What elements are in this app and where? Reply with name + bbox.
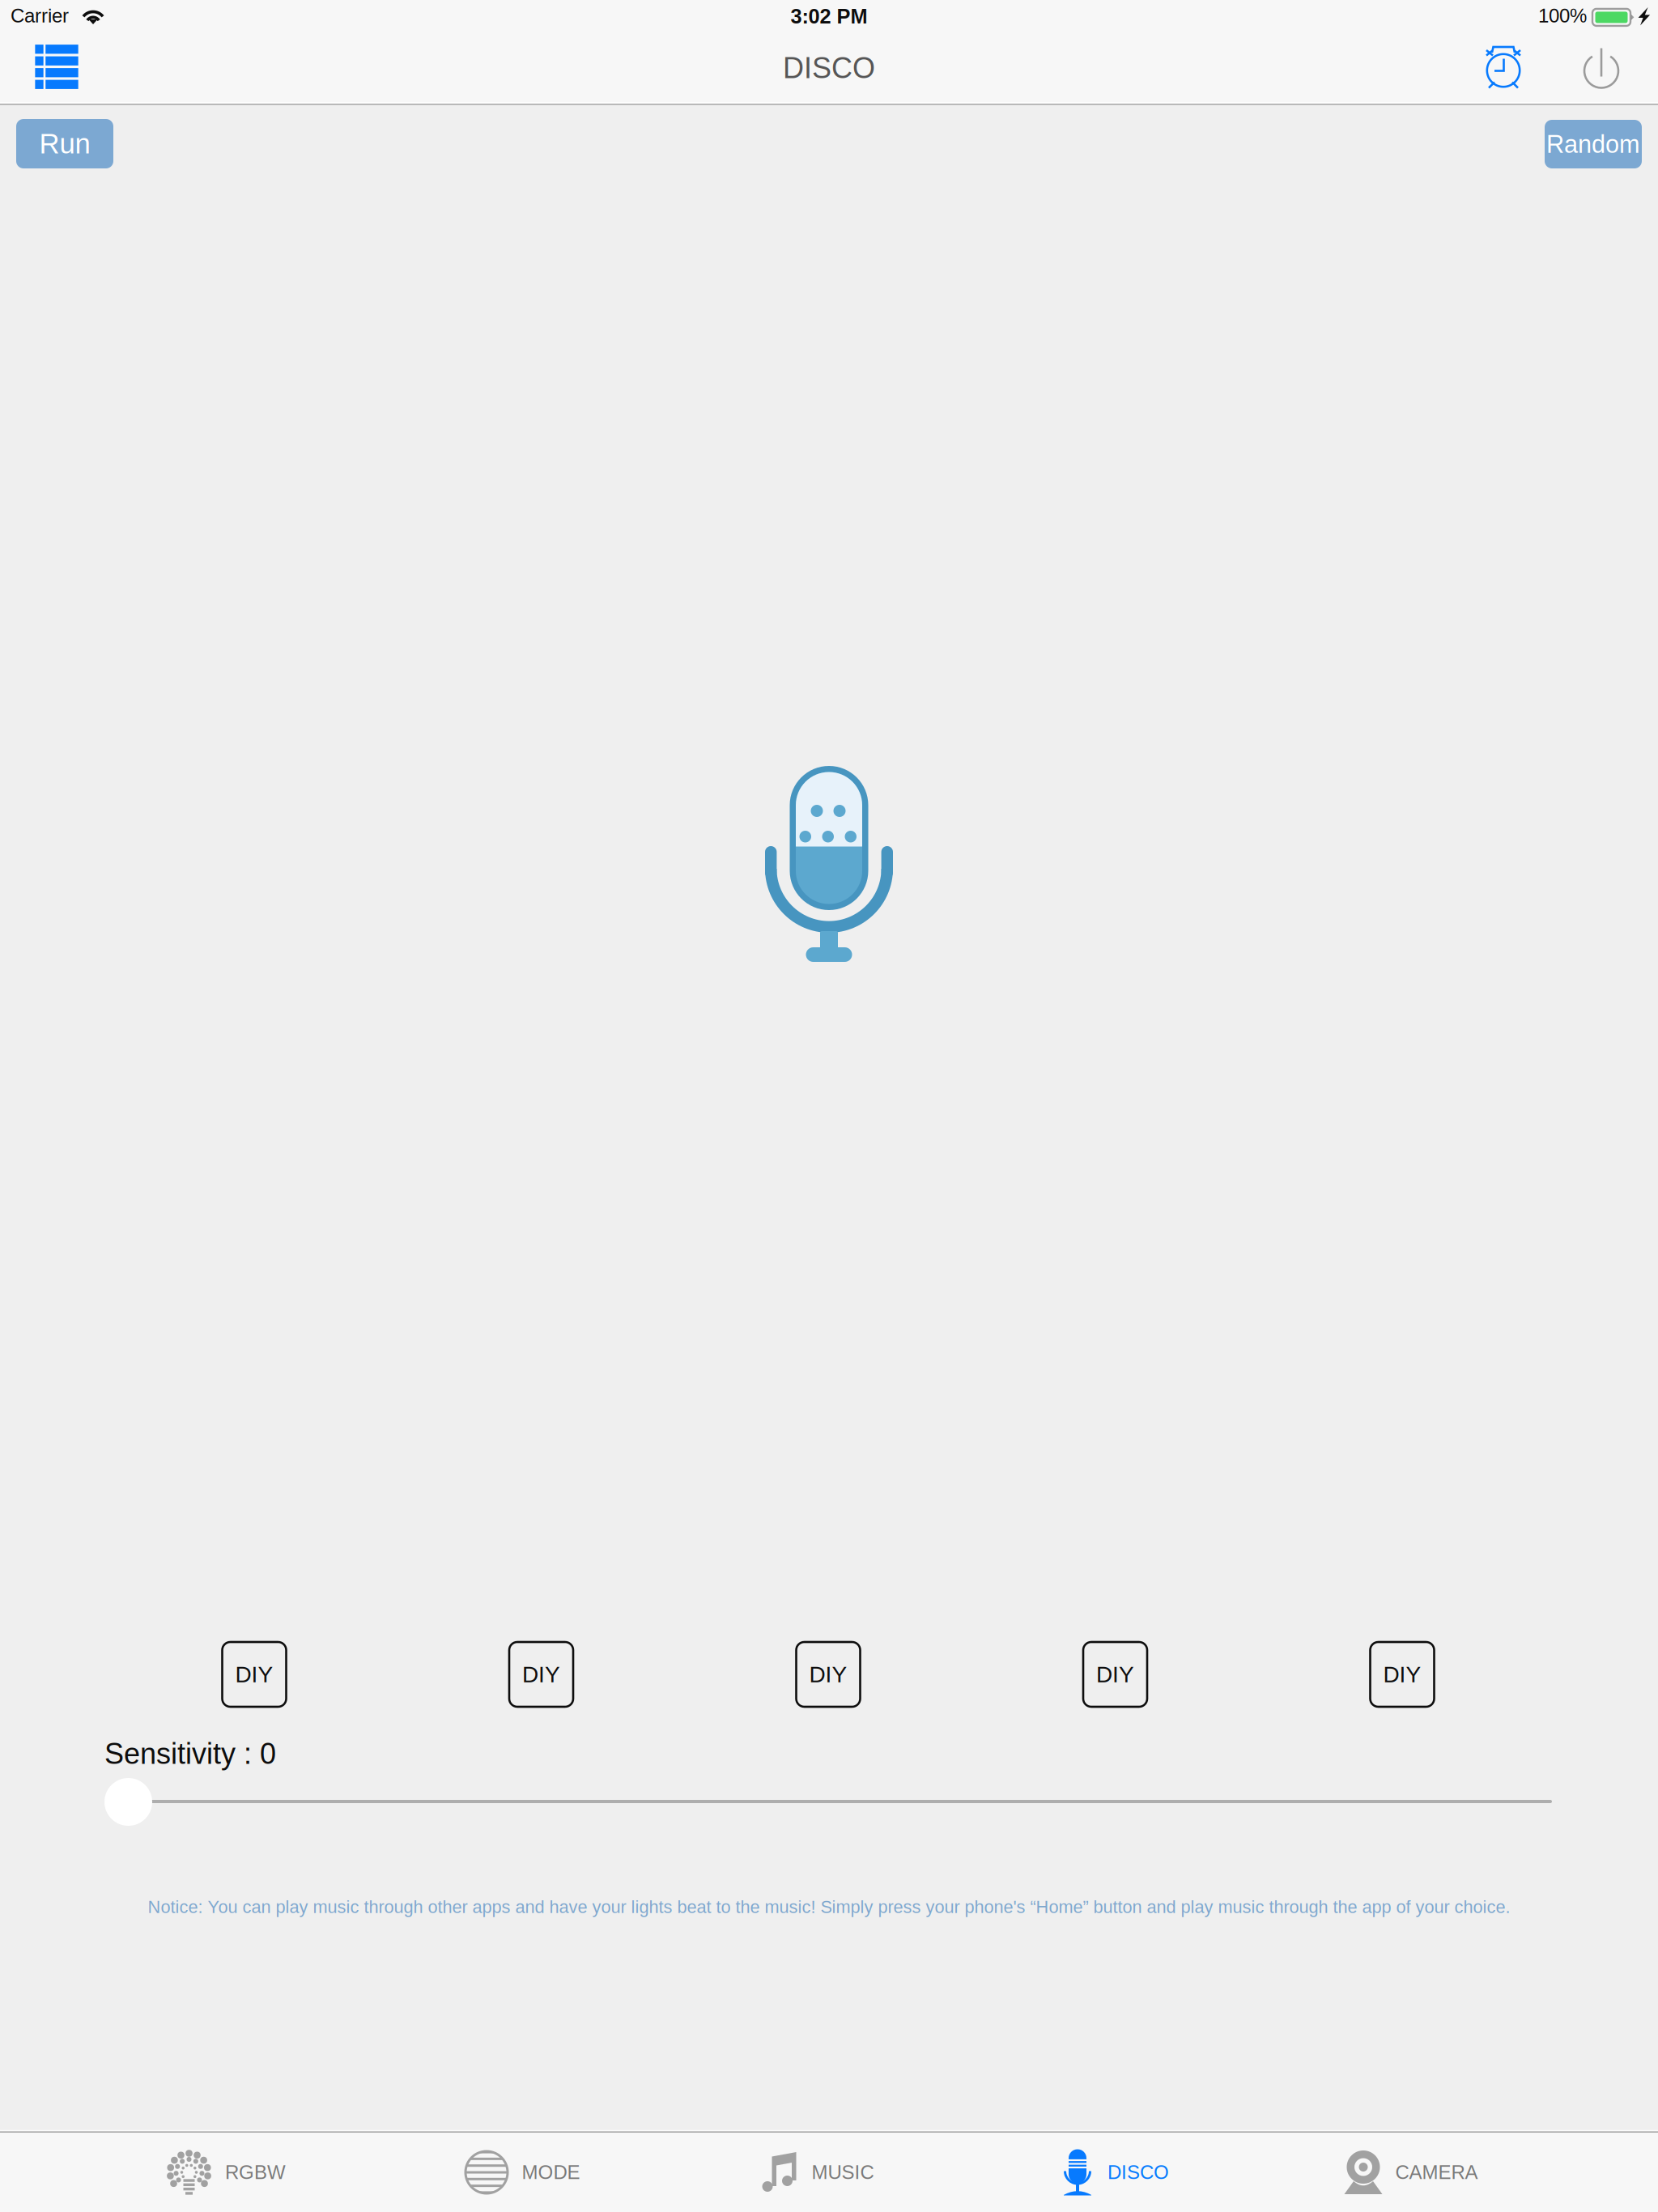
button[interactable]: DIY bbox=[222, 1642, 286, 1707]
button[interactable]: DIY bbox=[1083, 1642, 1147, 1707]
staticText: DISCO bbox=[1107, 2161, 1169, 2183]
button[interactable]: MODE bbox=[374, 2133, 670, 2212]
staticText: Sensitivity : 0 bbox=[104, 1738, 276, 1770]
button[interactable]: Power bbox=[1573, 36, 1630, 100]
staticText: DIY bbox=[235, 1662, 273, 1687]
staticText: DISCO bbox=[783, 52, 875, 84]
staticText: Notice: You can play music through other… bbox=[148, 1897, 1510, 1917]
staticText: CAMERA bbox=[1395, 2161, 1478, 2183]
button[interactable]: MUSIC bbox=[670, 2133, 967, 2212]
staticText: RGBW bbox=[225, 2161, 286, 2183]
staticText: DIY bbox=[809, 1662, 847, 1687]
staticText: 100% bbox=[1538, 5, 1587, 27]
staticText: DIY bbox=[522, 1662, 560, 1687]
button[interactable]: DISCO bbox=[967, 2133, 1263, 2212]
button[interactable]: Menu bbox=[22, 32, 91, 101]
staticText: 3:02 PM bbox=[791, 5, 867, 28]
staticText: DIY bbox=[1383, 1662, 1421, 1687]
staticText: Carrier bbox=[11, 5, 69, 27]
button[interactable]: Timer bbox=[1474, 34, 1533, 100]
staticText: Random bbox=[1546, 130, 1640, 158]
button[interactable]: Random bbox=[1545, 120, 1642, 168]
button[interactable]: DIY bbox=[509, 1642, 573, 1707]
staticText: Run bbox=[39, 128, 90, 159]
staticText: DIY bbox=[1096, 1662, 1134, 1687]
button[interactable]: Run bbox=[16, 119, 113, 168]
button[interactable]: DIY bbox=[1370, 1642, 1434, 1707]
staticText: MODE bbox=[522, 2161, 580, 2183]
button[interactable]: CAMERA bbox=[1263, 2133, 1559, 2212]
staticText: MUSIC bbox=[812, 2161, 874, 2183]
button[interactable]: RGBW bbox=[78, 2133, 374, 2212]
button[interactable]: DIY bbox=[796, 1642, 860, 1707]
